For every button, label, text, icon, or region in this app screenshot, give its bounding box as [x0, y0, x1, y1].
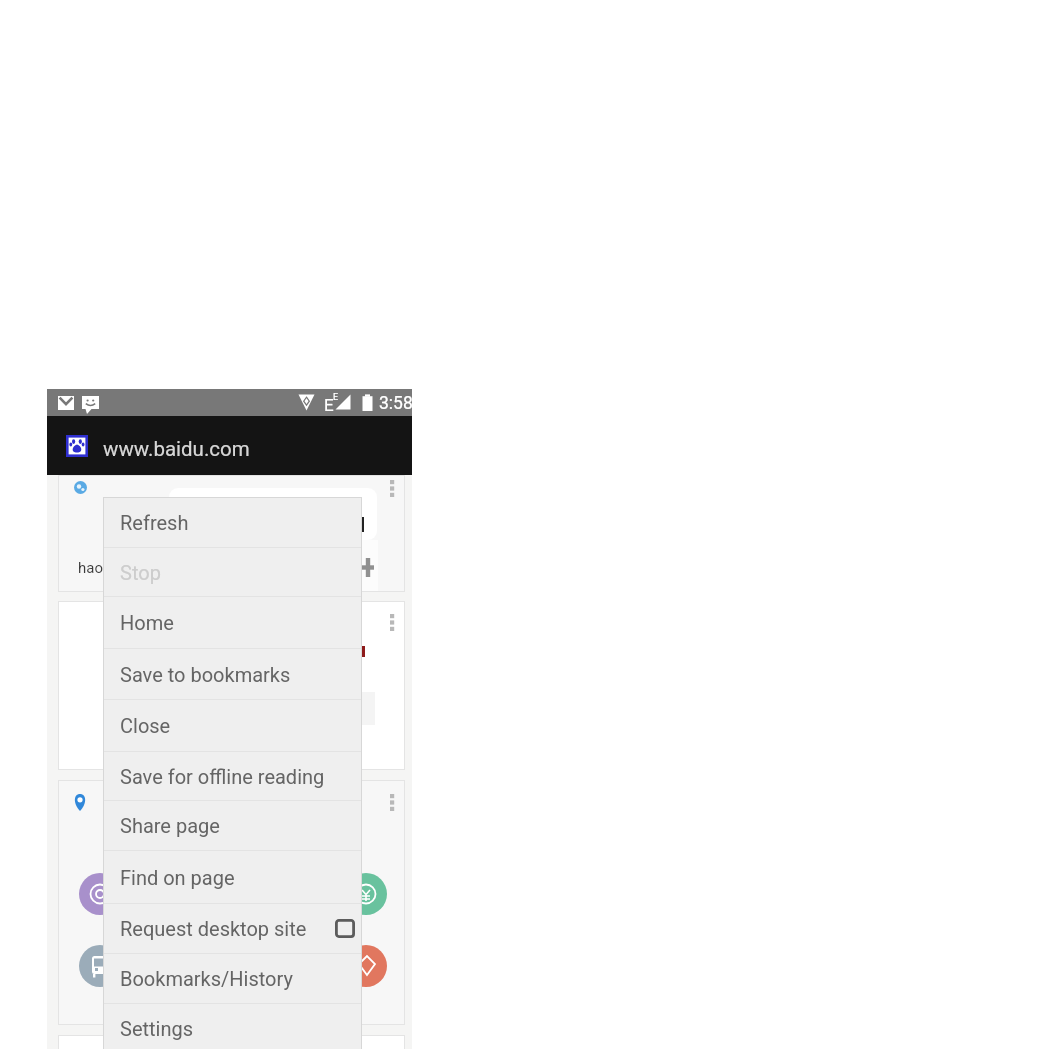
other: More options: [390, 480, 395, 497]
other: More options: [390, 614, 395, 631]
button[interactable]: Settings: [103, 1004, 362, 1049]
staticText: Save for offline reading: [120, 765, 325, 788]
button[interactable]: Bookmarks/History: [103, 954, 362, 1003]
staticText: Save to bookmarks: [120, 663, 291, 686]
button[interactable]: Shortcut: [345, 945, 387, 987]
button[interactable]: Shortcut: [79, 945, 121, 987]
staticText: Refresh: [120, 511, 189, 534]
button[interactable]: Home: [103, 597, 362, 648]
staticText: 3:58: [379, 393, 413, 414]
staticText: hao: [78, 559, 103, 577]
staticText: Close: [120, 714, 171, 737]
other: More options: [390, 794, 395, 811]
button[interactable]: Shortcut: [79, 873, 121, 915]
staticText: Settings: [120, 1017, 194, 1040]
staticText: Share page: [120, 814, 220, 837]
staticText: Find on page: [120, 866, 235, 889]
button[interactable]: Site icon: [47, 416, 412, 475]
button[interactable]: Close: [103, 700, 362, 751]
staticText: Bookmarks/History: [120, 967, 293, 990]
staticText: Request desktop site: [120, 917, 307, 940]
staticText: Home: [120, 611, 174, 634]
staticText: E: [324, 395, 334, 415]
button[interactable]: Share page: [103, 801, 362, 850]
button[interactable]: Save to bookmarks: [103, 649, 362, 699]
button[interactable]: Shortcut: [345, 873, 387, 915]
staticText: E: [333, 392, 339, 403]
other: Site icon: [66, 435, 88, 457]
button[interactable]: Refresh: [103, 497, 362, 547]
button[interactable]: Find on page: [103, 851, 362, 903]
button[interactable]: Stop: [103, 548, 362, 596]
staticText: Stop: [120, 561, 161, 584]
button[interactable]: Save for offline reading: [103, 752, 362, 800]
button[interactable]: Request desktop site: [103, 904, 362, 953]
staticText: www.baidu.com: [103, 437, 250, 461]
